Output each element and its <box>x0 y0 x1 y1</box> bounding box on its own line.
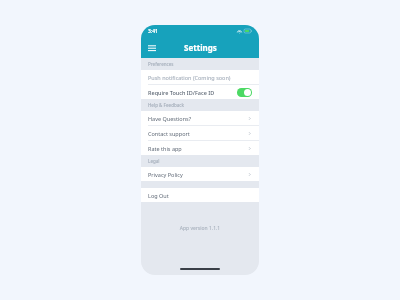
staticText: Have Questions? <box>148 115 247 122</box>
staticText: Preferences <box>148 61 174 67</box>
staticText: Settings <box>184 42 217 53</box>
button[interactable]: Rate this app <box>141 141 259 155</box>
button[interactable]: Log Out <box>141 188 259 202</box>
staticText: Help & Feedback <box>148 102 185 108</box>
button[interactable]: Push notification (Coming soon) <box>141 70 259 84</box>
staticText: Require Touch ID/Face ID <box>148 89 237 96</box>
staticText: Legal <box>148 158 160 164</box>
button[interactable]: Have Questions? <box>141 111 259 125</box>
staticText: Contact support <box>148 130 247 137</box>
staticText: Push notification (Coming soon) <box>148 74 252 81</box>
button[interactable]: Open navigation menu <box>145 41 159 55</box>
button[interactable]: Contact support <box>141 126 259 140</box>
button[interactable]: Privacy Policy <box>141 167 259 181</box>
staticText: Log Out <box>148 192 252 199</box>
staticText: Privacy Policy <box>148 171 247 178</box>
button[interactable]: Require Touch ID/Face ID <box>141 85 259 99</box>
staticText: 3:41 <box>148 28 158 35</box>
staticText: Rate this app <box>148 145 247 152</box>
staticText: App version 1.1.1 <box>141 225 259 232</box>
